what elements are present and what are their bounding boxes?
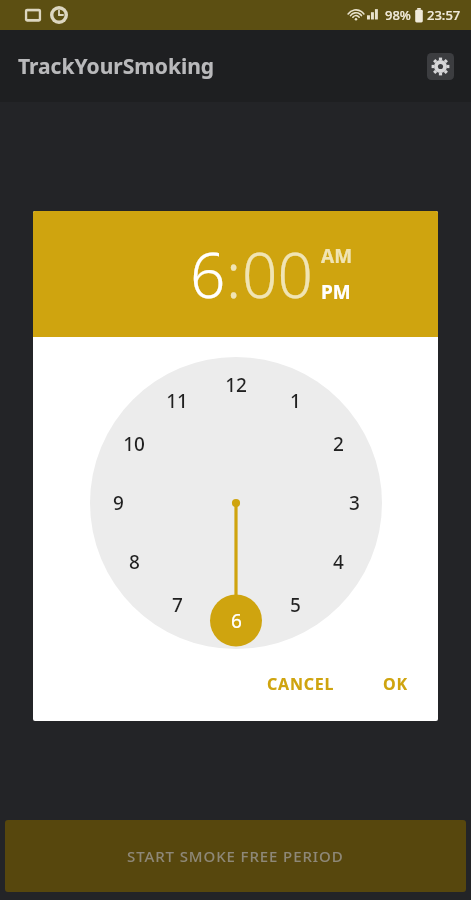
staticText: 98% (385, 6, 411, 24)
staticText: 1 (290, 388, 301, 414)
staticText: 23:57 (427, 6, 461, 24)
staticText: 7 (172, 592, 183, 618)
staticText: CANCEL (267, 673, 335, 695)
staticText: 4 (333, 549, 344, 575)
staticText: 5 (290, 592, 301, 618)
button[interactable]: CANCEL (257, 665, 345, 703)
staticText: TrackYourSmoking (18, 52, 215, 81)
staticText: 10 (123, 431, 145, 457)
staticText: 8 (129, 549, 140, 575)
button[interactable]: PM (321, 279, 351, 305)
staticText: 6 (231, 608, 242, 634)
staticText: 2 (333, 431, 344, 457)
staticText: 11 (166, 388, 188, 414)
staticText: 12 (225, 372, 247, 398)
button[interactable]: 00 (242, 232, 313, 316)
staticText: : (226, 232, 242, 316)
button[interactable]: Settings (423, 49, 457, 83)
button[interactable]: 12 (90, 357, 382, 649)
staticText: 9 (113, 490, 124, 516)
button[interactable]: OK (373, 665, 418, 703)
staticText: OK (383, 673, 408, 695)
staticText: 3 (349, 490, 360, 516)
button[interactable]: AM (321, 243, 353, 269)
button[interactable]: 6 (190, 232, 226, 316)
button[interactable]: START SMOKE FREE PERIOD (5, 820, 466, 892)
staticText: START SMOKE FREE PERIOD (127, 846, 344, 866)
